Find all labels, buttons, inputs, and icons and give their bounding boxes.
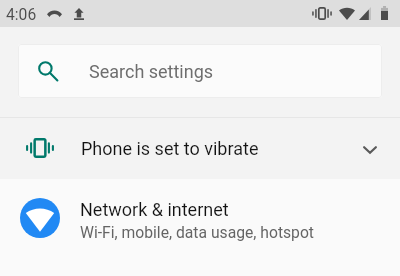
staticText: 4:06 [6,5,37,23]
staticText: Network & internet [80,199,229,220]
button[interactable]: Phone is set to vibrate [0,118,400,179]
button[interactable]: Network & internet [0,179,400,276]
staticText: Search settings [89,61,214,82]
button[interactable]: Search settings [18,44,382,98]
staticText: Wi-Fi, mobile, data usage, hotspot [80,223,314,241]
staticText: Phone is set to vibrate [81,138,259,159]
other: Expand [363,146,377,154]
